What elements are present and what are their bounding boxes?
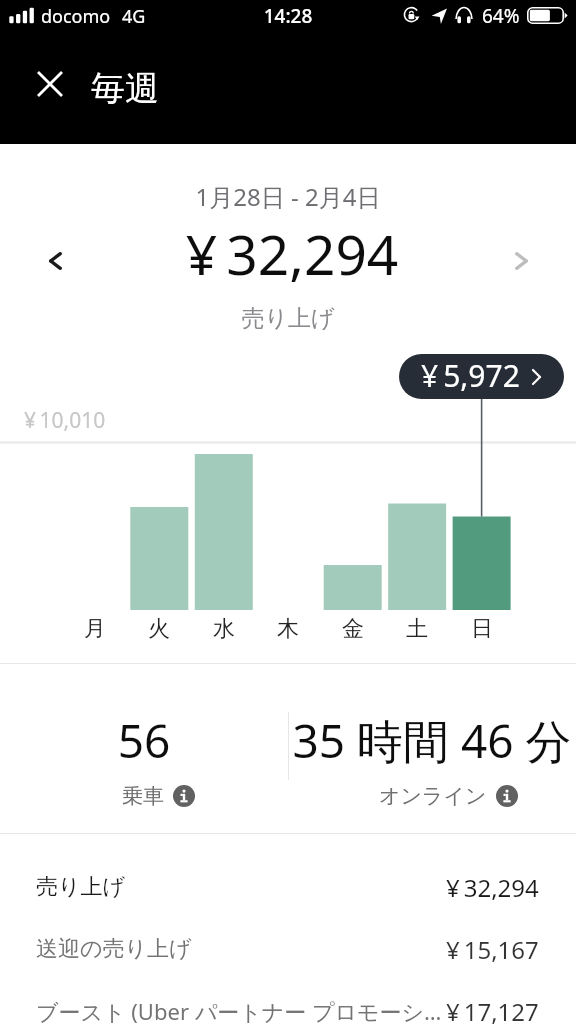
staticText: 月 [84, 615, 106, 643]
staticText: 64% [482, 3, 520, 29]
staticText: オンライン [379, 783, 487, 809]
staticText: 売り上げ [0, 304, 576, 333]
staticText: ¥ 15,167 [446, 933, 539, 966]
staticText: 水 [213, 615, 235, 643]
staticText: ¥ 5,972 [421, 355, 520, 396]
staticText: 日 [471, 615, 493, 643]
staticText: ¥ 32,294 [446, 871, 539, 904]
staticText: ブースト (Uber パートナー プロモーシ… [36, 996, 446, 1024]
staticText: 金 [342, 615, 364, 643]
staticText: 56 [0, 709, 288, 772]
staticText: docomo [41, 4, 111, 29]
button[interactable]: 売り上げ [0, 862, 576, 912]
button[interactable]: Next week [497, 237, 545, 285]
button[interactable]: Sunday earnings detail [399, 354, 564, 399]
staticText: ¥ 17,127 [446, 995, 539, 1024]
button[interactable]: 送迎の売り上げ [0, 924, 576, 974]
staticText: 35 時間 46 分 [288, 709, 576, 772]
staticText: 乗車 [122, 783, 164, 809]
staticText: 木 [277, 615, 299, 643]
staticText: 送迎の売り上げ [36, 935, 446, 963]
button[interactable]: Close [26, 60, 74, 108]
staticText: 1月28日 - 2月4日 [0, 180, 576, 213]
staticText: ¥ 10,010 [24, 406, 106, 435]
staticText: 4G [122, 4, 146, 29]
button[interactable]: Previous week [31, 237, 79, 285]
staticText: 火 [148, 615, 170, 643]
staticText: 土 [406, 615, 428, 643]
button[interactable]: ブースト (Uber パートナー プロモーシ… [0, 986, 576, 1024]
button[interactable]: 乗車 [122, 782, 195, 810]
staticText: ¥ 32,294 [4, 216, 576, 291]
staticText: 売り上げ [36, 873, 446, 901]
button[interactable]: オンライン [379, 782, 518, 810]
staticText: 毎週 [91, 67, 159, 110]
staticText: 14:28 [0, 3, 576, 29]
